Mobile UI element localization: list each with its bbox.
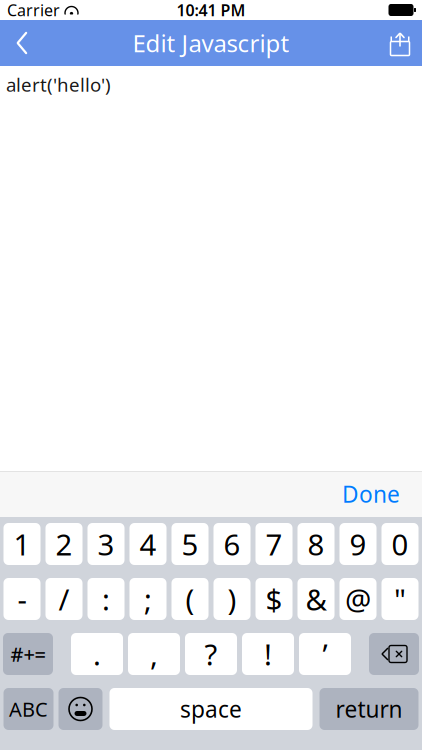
staticText: 10:41 PM (176, 0, 245, 21)
button[interactable]: - (3, 578, 40, 620)
button[interactable]: return (319, 688, 418, 730)
staticText: / (58, 579, 69, 618)
button[interactable]: 4 (129, 523, 166, 565)
button[interactable]: Done (330, 469, 412, 519)
staticText: return (335, 694, 402, 724)
button[interactable]: 2 (45, 523, 82, 565)
staticText: 6 (223, 524, 240, 563)
staticText: " (394, 579, 406, 618)
staticText: ) (227, 579, 236, 618)
staticText: : (102, 579, 110, 618)
button[interactable]: Back (0, 20, 44, 66)
staticText: Carrier (7, 0, 60, 21)
staticText: 8 (307, 524, 324, 563)
button[interactable]: ’ (299, 633, 351, 675)
button[interactable]: space (109, 688, 312, 730)
staticText: ( (185, 579, 194, 618)
button[interactable]: : (87, 578, 124, 620)
button[interactable]: ) (213, 578, 250, 620)
staticText: 1 (13, 524, 30, 563)
staticText: $ (265, 579, 282, 618)
staticText: 5 (181, 524, 198, 563)
button[interactable]: 0 (381, 523, 418, 565)
staticText: space (180, 694, 242, 724)
button[interactable]: 9 (339, 523, 376, 565)
staticText: Done (342, 479, 400, 509)
button[interactable]: 5 (171, 523, 208, 565)
staticText: 4 (139, 524, 156, 563)
staticText: #+= (10, 641, 45, 667)
button[interactable]: $ (255, 578, 292, 620)
button[interactable]: Delete (369, 633, 419, 675)
button[interactable]: Share (378, 20, 422, 66)
button[interactable]: 1 (3, 523, 40, 565)
staticText: & (305, 579, 326, 618)
staticText: ABC (9, 696, 48, 722)
staticText: 2 (55, 524, 72, 563)
button[interactable]: #+= (3, 633, 53, 675)
staticText: 0 (391, 524, 408, 563)
staticText: ! (264, 634, 272, 673)
button[interactable]: " (381, 578, 418, 620)
button[interactable]: 8 (297, 523, 334, 565)
button[interactable]: ! (242, 633, 294, 675)
staticText: ? (204, 634, 217, 673)
staticText: @ (345, 579, 371, 618)
button[interactable]: 7 (255, 523, 292, 565)
staticText: 9 (349, 524, 366, 563)
button[interactable]: ( (171, 578, 208, 620)
staticText: 7 (265, 524, 282, 563)
staticText: ’ (322, 634, 327, 673)
button[interactable]: @ (339, 578, 376, 620)
button[interactable]: Emoji (58, 688, 102, 730)
staticText: . (93, 634, 101, 673)
button[interactable]: ABC (3, 688, 53, 730)
staticText: ; (144, 579, 152, 618)
staticText: alert('hello') (6, 72, 111, 97)
button[interactable]: ? (185, 633, 237, 675)
button[interactable]: , (128, 633, 180, 675)
button[interactable]: / (45, 578, 82, 620)
staticText: - (17, 579, 26, 618)
button[interactable]: ; (129, 578, 166, 620)
button[interactable]: 6 (213, 523, 250, 565)
button[interactable]: . (71, 633, 123, 675)
staticText: 3 (97, 524, 114, 563)
button[interactable]: 3 (87, 523, 124, 565)
staticText: Edit Javascript (132, 27, 289, 59)
staticText: , (150, 634, 158, 673)
button[interactable]: & (297, 578, 334, 620)
